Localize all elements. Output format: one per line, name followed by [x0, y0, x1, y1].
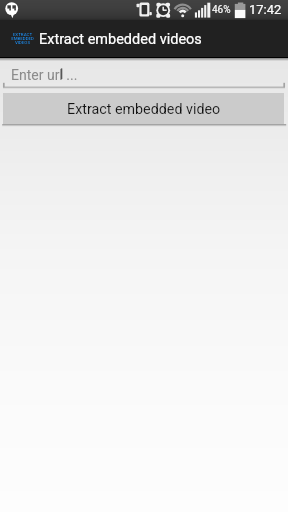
staticText: Extract embedded video [67, 101, 221, 118]
staticText: EMBEDDED [11, 36, 34, 41]
other: App icon [11, 32, 34, 45]
staticText: Extract embedded videos [39, 31, 202, 48]
staticText: VIDEOS [11, 40, 34, 45]
staticText: 17:42 [249, 2, 282, 17]
button[interactable]: Enter url ... [0, 61, 288, 91]
staticText: EXTRACT [11, 32, 34, 37]
staticText: Enter url ... [11, 67, 78, 83]
staticText: 46% [212, 4, 231, 16]
button[interactable]: App icon [0, 20, 288, 57]
button[interactable]: Extract embedded video [3, 93, 284, 124]
